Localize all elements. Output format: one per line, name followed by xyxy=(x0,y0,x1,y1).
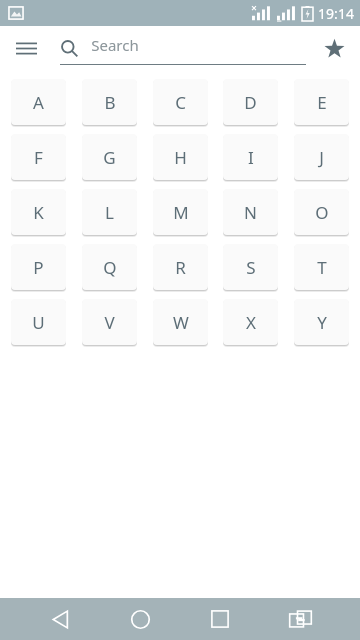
staticText: R xyxy=(175,256,186,279)
staticText: Q xyxy=(103,256,117,279)
button[interactable]: Favorites xyxy=(314,28,354,68)
staticText: X xyxy=(246,311,256,334)
button[interactable]: S xyxy=(223,244,278,290)
staticText: D xyxy=(244,91,257,114)
button[interactable]: Home xyxy=(116,598,164,640)
button[interactable]: E xyxy=(294,79,349,125)
staticText: F xyxy=(34,146,43,169)
button[interactable]: M xyxy=(153,189,208,235)
button[interactable]: Y xyxy=(294,299,349,345)
staticText: K xyxy=(33,201,44,224)
button[interactable]: D xyxy=(223,79,278,125)
staticText: O xyxy=(315,201,329,224)
staticText: U xyxy=(32,311,45,334)
staticText: W xyxy=(173,311,189,334)
button[interactable]: U xyxy=(11,299,66,345)
staticText: P xyxy=(33,256,44,279)
button[interactable]: T xyxy=(294,244,349,290)
button[interactable]: Open navigation menu xyxy=(6,28,46,68)
staticText: V xyxy=(104,311,115,334)
button[interactable]: B xyxy=(82,79,137,125)
button[interactable]: A xyxy=(11,79,66,125)
button[interactable]: I xyxy=(223,134,278,180)
button[interactable]: Switch app xyxy=(276,598,324,640)
staticText: A xyxy=(33,91,44,114)
staticText: L xyxy=(105,201,114,224)
staticText: B xyxy=(104,91,116,114)
staticText: T xyxy=(317,256,327,279)
staticText: G xyxy=(103,146,116,169)
staticText: M xyxy=(173,201,189,224)
button[interactable]: N xyxy=(223,189,278,235)
staticText: H xyxy=(174,146,187,169)
staticText: 19:14 xyxy=(318,4,354,23)
staticText: J xyxy=(319,146,324,169)
staticText: E xyxy=(317,91,327,114)
button[interactable]: V xyxy=(82,299,137,345)
button[interactable]: C xyxy=(153,79,208,125)
staticText: Search xyxy=(91,35,139,55)
button[interactable]: Back xyxy=(36,598,84,640)
staticText: I xyxy=(248,146,254,169)
staticText: C xyxy=(175,91,186,114)
staticText: Y xyxy=(317,311,327,334)
button[interactable]: Recent apps xyxy=(196,598,244,640)
button[interactable]: H xyxy=(153,134,208,180)
button[interactable]: F xyxy=(11,134,66,180)
staticText: S xyxy=(246,256,256,279)
button[interactable]: G xyxy=(82,134,137,180)
button[interactable]: X xyxy=(223,299,278,345)
button[interactable]: J xyxy=(294,134,349,180)
button[interactable]: O xyxy=(294,189,349,235)
button[interactable]: K xyxy=(11,189,66,235)
staticText: N xyxy=(244,201,257,224)
button[interactable]: Search xyxy=(60,31,306,65)
button[interactable]: W xyxy=(153,299,208,345)
button[interactable]: Q xyxy=(82,244,137,290)
button[interactable]: Search xyxy=(54,33,84,63)
button[interactable]: R xyxy=(153,244,208,290)
button[interactable]: P xyxy=(11,244,66,290)
button[interactable]: L xyxy=(82,189,137,235)
